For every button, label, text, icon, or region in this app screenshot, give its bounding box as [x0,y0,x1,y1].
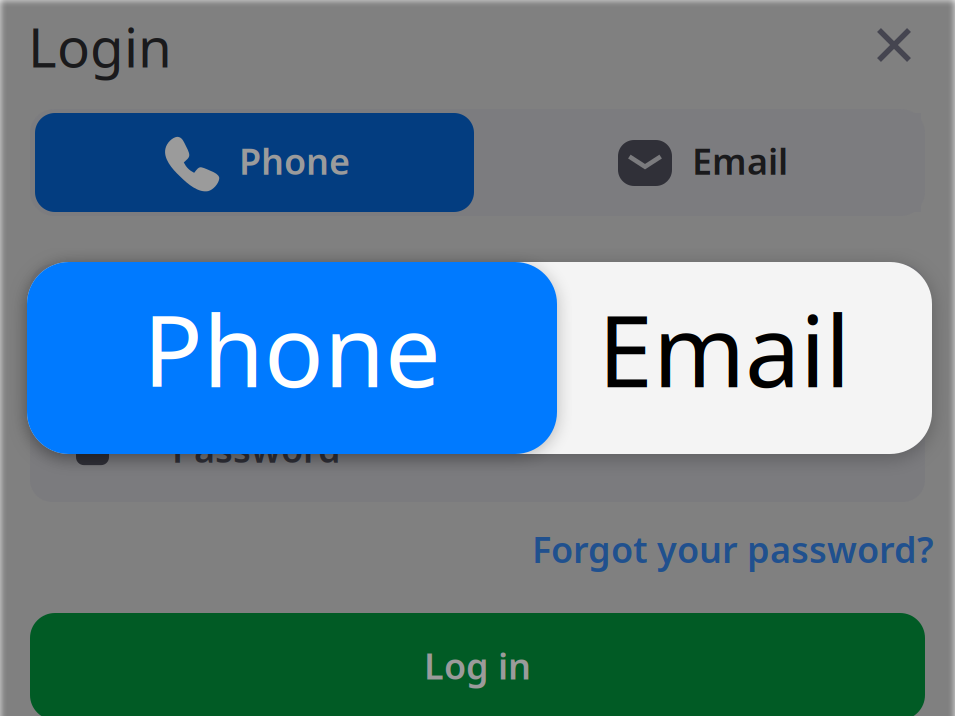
staticText: Email [598,283,850,414]
staticText: Phone [239,137,350,185]
staticText: Email [692,137,788,185]
staticText: Log in [424,642,531,689]
button[interactable]: Email [559,262,889,454]
button[interactable]: Close [858,9,930,81]
staticText: Phone number [172,291,433,339]
staticText: Login [28,10,172,83]
button[interactable]: Forgot your password? [533,524,933,574]
staticText: Password [172,425,341,473]
button[interactable]: Phone [35,113,474,212]
staticText: Phone [143,283,441,414]
button[interactable]: Email [478,113,921,212]
button[interactable]: Log in [30,613,925,716]
staticText: Forgot your password? [532,525,934,573]
button[interactable]: Phone [27,262,557,454]
